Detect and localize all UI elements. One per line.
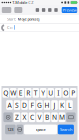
staticText: J <box>53 101 55 109</box>
button[interactable]: O <box>62 88 69 98</box>
button[interactable]: Z <box>14 112 20 122</box>
button[interactable]: C <box>29 112 35 122</box>
button[interactable]: R <box>25 88 32 98</box>
staticText: I <box>57 88 59 97</box>
staticText: R <box>26 88 30 97</box>
button[interactable]: Search <box>58 125 74 134</box>
staticText: P <box>71 88 75 97</box>
button[interactable]: Photo library <box>14 7 22 13</box>
button[interactable]: F <box>29 100 35 110</box>
button[interactable]: 123 <box>5 125 16 134</box>
staticText: T-Mobile <box>11 0 27 5</box>
staticText: U <box>48 88 53 97</box>
staticText: Y <box>41 88 45 97</box>
button[interactable]: Q <box>2 88 9 98</box>
button[interactable]: G <box>36 100 43 110</box>
button[interactable]: Tool <box>36 8 39 12</box>
staticText: CZ <box>27 0 33 5</box>
button[interactable]: J <box>51 100 58 110</box>
button[interactable]: E <box>17 88 24 98</box>
staticText: 123 <box>7 127 13 132</box>
staticText: Search <box>60 127 72 132</box>
button[interactable]: Tool <box>54 8 58 12</box>
button[interactable]: M <box>59 112 65 122</box>
staticText: C <box>30 113 34 122</box>
button[interactable]: A <box>6 100 13 110</box>
button[interactable]: L <box>66 100 73 110</box>
button[interactable]: D <box>21 100 28 110</box>
staticText: A <box>7 101 11 109</box>
staticText: Q <box>3 88 8 97</box>
button[interactable]: Tool <box>42 8 45 12</box>
staticText: G <box>37 101 42 109</box>
button[interactable]: W <box>10 88 17 98</box>
staticText: X <box>22 113 26 122</box>
staticText: N <box>52 113 57 122</box>
staticText: F <box>30 101 33 109</box>
button[interactable]: S <box>14 100 20 110</box>
button[interactable]: T <box>32 88 39 98</box>
staticText: V <box>37 113 41 122</box>
staticText: M <box>59 113 65 122</box>
button[interactable]: I <box>55 88 62 98</box>
staticText: L <box>68 101 71 109</box>
button[interactable]: Preview <box>62 7 77 13</box>
staticText: W <box>10 88 16 97</box>
staticText: space <box>35 127 45 132</box>
staticText: Preview <box>62 7 76 13</box>
button[interactable]: P <box>70 88 77 98</box>
button[interactable]: Y <box>40 88 47 98</box>
button[interactable]: Shift <box>3 112 13 122</box>
staticText: Z <box>15 113 19 122</box>
staticText: K <box>60 101 64 109</box>
button[interactable]: N <box>51 112 58 122</box>
staticText: S <box>15 101 19 109</box>
button[interactable]: H <box>44 100 50 110</box>
staticText: D <box>22 101 27 109</box>
staticText: O <box>63 88 68 97</box>
button[interactable]: B <box>44 112 50 122</box>
button[interactable]: X <box>21 112 28 122</box>
button[interactable]: Tool <box>48 8 51 12</box>
staticText: Start: <box>7 16 16 22</box>
button[interactable]: U <box>47 88 54 98</box>
button[interactable]: K <box>59 100 65 110</box>
staticText: Cc: <box>7 25 13 30</box>
staticText: Moje ponizej <box>17 16 39 22</box>
staticText: E <box>19 88 23 97</box>
staticText: H <box>44 101 49 109</box>
button[interactable]: space <box>24 125 57 134</box>
button[interactable]: Delete <box>66 112 76 122</box>
staticText: B <box>45 113 49 122</box>
button[interactable]: Emoji <box>16 125 23 134</box>
button[interactable]: V <box>36 112 43 122</box>
staticText: T <box>34 88 38 97</box>
